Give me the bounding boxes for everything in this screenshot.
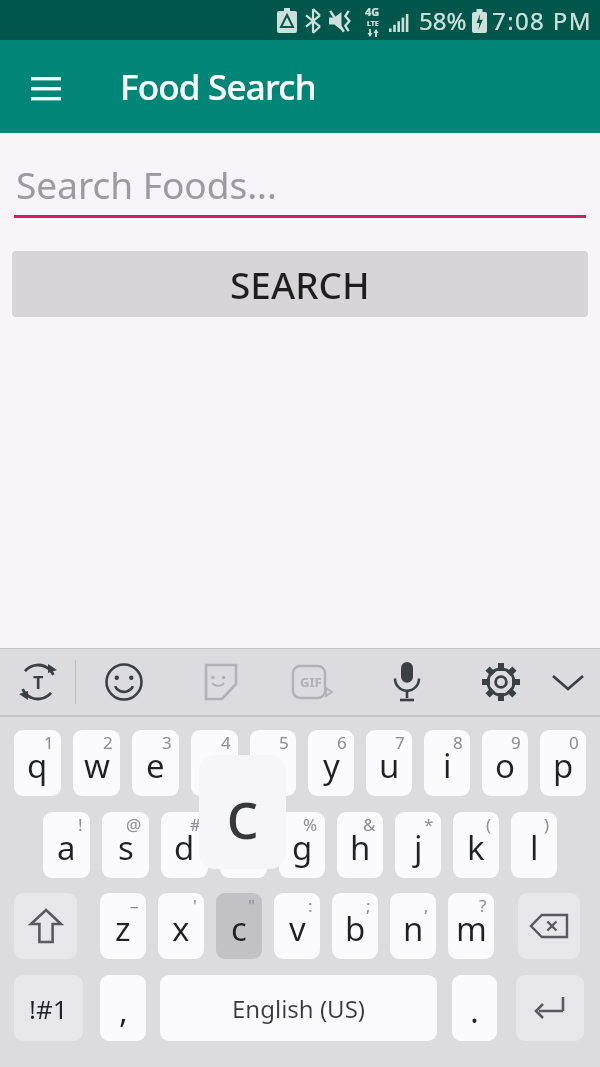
staticText: GIF (300, 673, 322, 691)
button[interactable]: & (337, 812, 383, 878)
button[interactable]: SEARCH (12, 251, 588, 317)
staticText: 6 (337, 731, 347, 754)
button[interactable]: ( (453, 812, 499, 878)
button[interactable]: * (395, 812, 441, 878)
staticText: LTE (367, 19, 379, 29)
staticText: SEARCH (230, 259, 370, 309)
button[interactable]: $ (220, 812, 267, 878)
button[interactable]: , (100, 975, 146, 1041)
staticText: , (424, 894, 429, 917)
staticText: : (308, 894, 313, 917)
button[interactable]: ) (511, 812, 557, 878)
staticText: Food Search (120, 63, 316, 111)
staticText: c (226, 766, 259, 859)
staticText: q (27, 743, 48, 788)
button[interactable] (454, 649, 548, 715)
button[interactable]: % (279, 812, 325, 878)
staticText: i (443, 743, 452, 788)
button[interactable]: !#1 (14, 975, 83, 1041)
button[interactable]: 4 (191, 730, 238, 796)
staticText: Search Foods... (16, 159, 277, 209)
staticText: 7:08 PM (492, 4, 592, 37)
staticText: k (467, 825, 485, 870)
staticText: T (33, 670, 44, 695)
staticText: a (57, 825, 76, 870)
staticText: English (US) (232, 992, 366, 1025)
button[interactable] (18, 59, 74, 115)
button[interactable]: 6 (308, 730, 354, 796)
button[interactable]: 0 (540, 730, 586, 796)
staticText: ; (366, 894, 371, 917)
button[interactable]: ; (332, 893, 378, 959)
staticText: n (403, 906, 424, 951)
button[interactable] (171, 649, 266, 715)
button[interactable]: ? (448, 893, 494, 959)
staticText: ' (193, 894, 197, 917)
staticText: $ (250, 813, 260, 836)
staticText: – (130, 894, 139, 917)
button[interactable]: 8 (424, 730, 470, 796)
button[interactable]: 3 (132, 730, 179, 796)
staticText: " (248, 894, 255, 917)
staticText: h (350, 825, 371, 870)
staticText: & (363, 813, 376, 836)
button[interactable]: ! (43, 812, 90, 878)
button[interactable]: 1 (14, 730, 61, 796)
button[interactable] (516, 975, 584, 1041)
button[interactable]: , (390, 893, 436, 959)
button[interactable]: ' (158, 893, 204, 959)
staticText: 3 (162, 731, 172, 754)
button[interactable]: 7 (366, 730, 412, 796)
staticText: ( (486, 813, 492, 836)
staticText: m (456, 906, 487, 951)
staticText: u (379, 743, 400, 788)
button[interactable]: 2 (73, 730, 120, 796)
staticText: d (174, 825, 195, 870)
button[interactable] (360, 649, 454, 715)
button[interactable] (76, 649, 171, 715)
staticText: 4 (221, 731, 231, 754)
staticText: x (172, 906, 190, 951)
staticText: s (118, 825, 134, 870)
button[interactable]: – (100, 893, 146, 959)
staticText: 9 (511, 731, 521, 754)
staticText: l (530, 825, 539, 870)
button[interactable]: English (US) (160, 975, 437, 1041)
staticText: p (553, 743, 574, 788)
button[interactable] (14, 893, 77, 959)
staticText: o (495, 743, 515, 788)
staticText: 7 (395, 731, 405, 754)
staticText: # (190, 813, 201, 836)
staticText: y (323, 743, 340, 788)
button[interactable]: T (0, 649, 75, 715)
staticText: 8 (453, 731, 463, 754)
button[interactable]: 5 (250, 730, 296, 796)
staticText: ) (544, 813, 550, 836)
staticText: !#1 (29, 991, 68, 1026)
staticText: e (146, 743, 165, 788)
staticText: r (208, 743, 222, 788)
button[interactable]: GIF (266, 649, 360, 715)
button[interactable]: . (452, 975, 497, 1041)
staticText: z (115, 906, 131, 951)
button[interactable]: : (274, 893, 320, 959)
button[interactable]: " (216, 893, 262, 959)
staticText: g (292, 825, 313, 870)
staticText: 4G (365, 4, 380, 19)
staticText: b (345, 906, 366, 951)
button[interactable]: Search Foods... (14, 159, 586, 218)
button[interactable] (518, 893, 580, 959)
staticText: j (414, 825, 423, 870)
button[interactable]: @ (102, 812, 149, 878)
staticText: 58% (419, 4, 467, 37)
staticText: . (470, 988, 479, 1033)
button[interactable]: 9 (482, 730, 528, 796)
staticText: % (303, 813, 318, 836)
button[interactable] (548, 649, 600, 715)
staticText: 1 (44, 731, 54, 754)
button[interactable]: # (161, 812, 208, 878)
staticText: v (289, 906, 306, 951)
staticText: w (84, 743, 110, 788)
staticText: 2 (103, 731, 113, 754)
